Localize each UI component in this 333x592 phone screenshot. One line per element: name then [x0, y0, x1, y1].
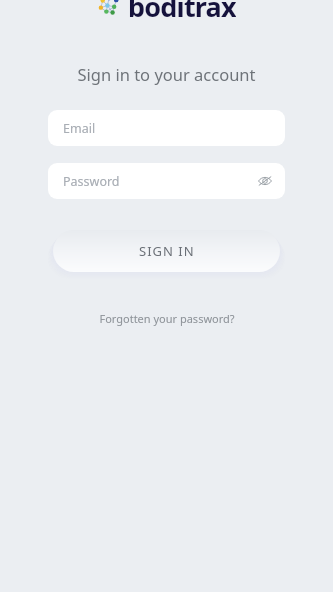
button[interactable]: SIGN IN	[53, 230, 280, 272]
staticText: Password	[63, 173, 120, 190]
staticText: Sign in to your account	[77, 63, 256, 85]
staticText: SIGN IN	[139, 242, 195, 260]
staticText: boditrax	[128, 0, 236, 22]
button[interactable]: Forgotten your password?	[93, 308, 241, 329]
button[interactable]: Show password	[253, 169, 277, 193]
staticText: Email	[63, 120, 96, 137]
button[interactable]: Password	[48, 163, 285, 199]
button[interactable]: Email	[48, 110, 285, 146]
staticText: Forgotten your password?	[99, 311, 235, 326]
